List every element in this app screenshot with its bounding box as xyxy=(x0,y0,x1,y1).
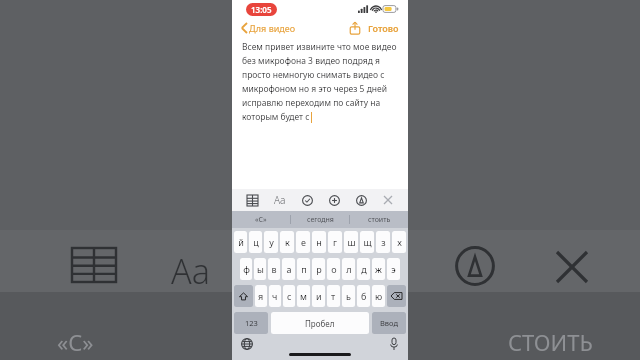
button[interactable]: о xyxy=(327,258,340,280)
button[interactable]: з xyxy=(376,231,390,253)
staticText: е xyxy=(301,236,306,248)
staticText: без микрофона 3 видео подряд я xyxy=(242,55,380,67)
staticText: я xyxy=(258,290,264,302)
button[interactable]: Close xyxy=(382,194,394,206)
button[interactable]: р xyxy=(312,258,325,280)
staticText: а xyxy=(286,263,292,275)
staticText: «С» xyxy=(255,215,267,225)
button[interactable]: с xyxy=(283,285,295,307)
button[interactable]: т xyxy=(327,285,340,307)
button[interactable]: б xyxy=(357,285,370,307)
staticText: «С» xyxy=(57,327,94,357)
button[interactable]: 123 xyxy=(234,312,268,334)
staticText: щ xyxy=(363,236,372,248)
staticText: Ввод xyxy=(380,318,399,328)
button[interactable]: ц xyxy=(249,231,262,253)
staticText: о xyxy=(331,263,337,275)
staticText: х xyxy=(397,236,402,248)
button[interactable]: п xyxy=(297,258,310,280)
button[interactable]: я xyxy=(255,285,267,307)
button[interactable]: Table xyxy=(246,194,259,207)
button[interactable]: Checklist xyxy=(301,194,314,207)
button[interactable]: в xyxy=(268,258,280,280)
staticText: Aa xyxy=(171,248,210,294)
button[interactable]: Dictation xyxy=(390,338,398,350)
staticText: ж xyxy=(375,263,382,275)
button[interactable]: й xyxy=(234,231,247,253)
button[interactable]: Для видео xyxy=(239,20,298,36)
staticText: микрофоном но я это через 5 дней xyxy=(242,83,388,95)
staticText: просто немногую снимать видео с xyxy=(242,69,385,81)
staticText: Пробел xyxy=(305,318,335,329)
button[interactable]: Готово xyxy=(366,20,401,36)
button[interactable]: ы xyxy=(254,258,266,280)
button[interactable]: Ввод xyxy=(372,312,406,334)
button[interactable]: щ xyxy=(360,231,374,253)
staticText: с xyxy=(287,290,292,302)
staticText: Для видео xyxy=(249,22,296,34)
staticText: 123 xyxy=(245,318,258,328)
button[interactable]: Shift xyxy=(234,285,253,307)
staticText: м xyxy=(300,290,307,302)
button[interactable]: а xyxy=(282,258,295,280)
button[interactable]: и xyxy=(312,285,325,307)
staticText: Всем привет извините что мое видео xyxy=(242,41,397,53)
staticText: ы xyxy=(257,263,264,275)
staticText: у xyxy=(269,236,274,248)
button[interactable]: д xyxy=(357,258,370,280)
staticText: к xyxy=(285,236,290,248)
button[interactable]: ю xyxy=(372,285,385,307)
button[interactable]: Markup xyxy=(355,194,368,207)
staticText: б xyxy=(361,290,367,302)
staticText: стоить xyxy=(368,215,391,225)
staticText: СТОИТЬ xyxy=(508,327,593,357)
staticText: Aa xyxy=(274,193,286,207)
staticText: з xyxy=(381,236,386,248)
button[interactable]: э xyxy=(387,258,400,280)
button[interactable]: Share xyxy=(348,21,362,35)
button[interactable]: ч xyxy=(269,285,281,307)
staticText: ш xyxy=(347,236,356,248)
button[interactable]: «С» xyxy=(232,211,290,228)
button[interactable]: е xyxy=(296,231,310,253)
button[interactable]: к xyxy=(280,231,294,253)
staticText: сегодня xyxy=(307,215,334,225)
button[interactable]: у xyxy=(264,231,278,253)
button[interactable]: ш xyxy=(344,231,358,253)
staticText: р xyxy=(316,263,322,275)
button[interactable]: ь xyxy=(342,285,355,307)
button[interactable]: Change keyboard xyxy=(241,338,253,350)
button[interactable]: сегодня xyxy=(291,211,349,228)
staticText: п xyxy=(301,263,307,275)
staticText: э xyxy=(391,263,396,275)
button[interactable]: Пробел xyxy=(271,312,369,334)
staticText: в xyxy=(271,263,277,275)
staticText: г xyxy=(333,236,337,248)
button[interactable]: л xyxy=(342,258,355,280)
button[interactable]: н xyxy=(312,231,326,253)
staticText: л xyxy=(346,263,352,275)
staticText: ь xyxy=(346,290,351,302)
staticText: ю xyxy=(375,290,383,302)
staticText: й xyxy=(238,236,244,248)
staticText: 13:05 xyxy=(251,4,272,15)
button[interactable]: Aa xyxy=(273,193,287,207)
staticText: ц xyxy=(253,236,259,248)
button[interactable]: х xyxy=(392,231,406,253)
staticText: т xyxy=(331,290,336,302)
button[interactable]: м xyxy=(297,285,310,307)
button[interactable]: ф xyxy=(240,258,252,280)
button[interactable]: г xyxy=(328,231,342,253)
staticText: д xyxy=(361,263,367,275)
staticText: н xyxy=(316,236,322,248)
staticText: исправлю переходим по сайту на xyxy=(242,97,381,109)
button[interactable]: ж xyxy=(372,258,385,280)
staticText: которым будет с xyxy=(242,111,310,123)
staticText: ч xyxy=(272,290,278,302)
button[interactable]: стоить xyxy=(350,211,408,228)
staticText: и xyxy=(316,290,322,302)
staticText: ф xyxy=(243,263,250,275)
staticText: Готово xyxy=(368,22,399,34)
button[interactable]: Backspace xyxy=(387,285,406,307)
button[interactable]: Add xyxy=(328,194,341,207)
